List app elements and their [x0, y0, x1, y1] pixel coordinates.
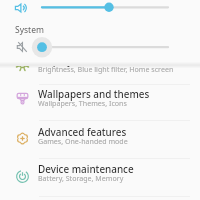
staticText: Games, One-handed mode [38, 136, 128, 146]
staticText: Advanced features [38, 125, 127, 138]
staticText: Battery, Storage, Memory [38, 173, 124, 183]
button[interactable]: Media volume [0, 0, 200, 24]
button[interactable]: Display [0, 66, 200, 87]
staticText: Device maintenance [38, 162, 134, 175]
staticText: Wallpapers, Themes, Icons [38, 98, 127, 108]
button[interactable]: Device maintenance [0, 159, 200, 196]
staticText: Brightness, Blue light filter, Home scre… [38, 66, 174, 74]
button[interactable]: Wallpapers and themes [0, 84, 200, 121]
button[interactable]: Advanced features [0, 122, 200, 159]
button[interactable]: System volume [0, 36, 200, 60]
staticText: System [15, 24, 44, 36]
staticText: Wallpapers and themes [38, 87, 150, 100]
